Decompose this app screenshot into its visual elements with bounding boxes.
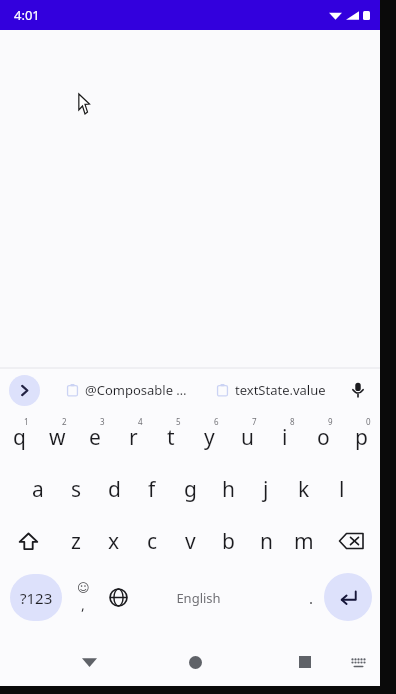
- button[interactable]: ?123: [10, 574, 62, 621]
- button[interactable]: Home: [178, 645, 212, 679]
- staticText: 6: [214, 416, 219, 427]
- staticText: @Composable …: [85, 381, 187, 399]
- button[interactable]: 2: [38, 411, 76, 463]
- button[interactable]: ☺: [66, 574, 100, 621]
- staticText: l: [339, 475, 345, 504]
- button[interactable]: h: [209, 463, 247, 515]
- button[interactable]: d: [95, 463, 133, 515]
- staticText: English: [176, 589, 221, 607]
- staticText: h: [222, 475, 235, 504]
- button[interactable]: 8: [266, 411, 304, 463]
- button[interactable]: 9: [304, 411, 342, 463]
- button[interactable]: k: [285, 463, 323, 515]
- button[interactable]: @Composable …: [66, 381, 187, 399]
- staticText: 4: [138, 416, 143, 427]
- staticText: u: [241, 423, 254, 452]
- staticText: 9: [328, 416, 333, 427]
- staticText: n: [260, 527, 273, 556]
- button[interactable]: textState.value: [216, 381, 326, 399]
- button[interactable]: x: [95, 515, 133, 567]
- button[interactable]: Recent apps: [288, 645, 322, 679]
- staticText: 5: [176, 416, 181, 427]
- button[interactable]: b: [209, 515, 247, 567]
- staticText: t: [167, 423, 175, 452]
- staticText: 7: [252, 416, 257, 427]
- staticText: p: [355, 423, 368, 452]
- staticText: s: [71, 475, 82, 504]
- staticText: 2: [62, 416, 67, 427]
- button[interactable]: 6: [190, 411, 228, 463]
- staticText: r: [129, 423, 138, 452]
- staticText: ?123: [20, 588, 53, 608]
- staticText: .: [309, 588, 314, 608]
- staticText: 4:01: [14, 6, 40, 24]
- staticText: a: [32, 475, 44, 504]
- staticText: ☺: [77, 581, 90, 595]
- button[interactable]: l: [323, 463, 361, 515]
- staticText: g: [184, 475, 197, 504]
- staticText: k: [298, 475, 310, 504]
- staticText: f: [148, 475, 156, 504]
- button[interactable]: n: [247, 515, 285, 567]
- button[interactable]: Expand suggestions: [9, 375, 40, 406]
- button[interactable]: 0: [342, 411, 380, 463]
- button[interactable]: 4: [114, 411, 152, 463]
- button[interactable]: English: [113, 574, 283, 621]
- button[interactable]: Enter: [324, 573, 372, 621]
- staticText: 3: [100, 416, 105, 427]
- staticText: x: [108, 527, 120, 556]
- staticText: e: [89, 423, 101, 452]
- staticText: d: [108, 475, 121, 504]
- button[interactable]: j: [247, 463, 285, 515]
- button[interactable]: 1: [0, 411, 38, 463]
- staticText: b: [222, 527, 235, 556]
- staticText: m: [294, 527, 314, 556]
- button[interactable]: z: [57, 515, 95, 567]
- staticText: i: [282, 423, 288, 452]
- button[interactable]: Back: [72, 645, 106, 679]
- button[interactable]: Switch keyboard: [343, 647, 373, 677]
- staticText: 0: [366, 416, 371, 427]
- button[interactable]: g: [171, 463, 209, 515]
- button[interactable]: 3: [76, 411, 114, 463]
- staticText: w: [49, 423, 66, 452]
- staticText: j: [263, 475, 269, 504]
- staticText: o: [317, 423, 330, 452]
- staticText: v: [185, 527, 196, 556]
- staticText: q: [13, 423, 26, 452]
- staticText: 8: [290, 416, 295, 427]
- staticText: 1: [24, 416, 29, 427]
- staticText: c: [147, 527, 158, 556]
- button[interactable]: 7: [228, 411, 266, 463]
- button[interactable]: s: [57, 463, 95, 515]
- button[interactable]: c: [133, 515, 171, 567]
- button[interactable]: a: [19, 463, 57, 515]
- staticText: textState.value: [235, 381, 326, 399]
- button[interactable]: .: [296, 574, 326, 621]
- button[interactable]: v: [171, 515, 209, 567]
- staticText: y: [204, 423, 215, 452]
- button[interactable]: Voice input: [344, 376, 372, 404]
- button[interactable]: Backspace: [323, 515, 380, 567]
- button[interactable]: Change language: [101, 580, 135, 614]
- button[interactable]: 5: [152, 411, 190, 463]
- staticText: z: [71, 527, 81, 556]
- button[interactable]: f: [133, 463, 171, 515]
- button[interactable]: Shift: [0, 515, 57, 567]
- staticText: ,: [81, 595, 85, 614]
- button[interactable]: m: [285, 515, 323, 567]
